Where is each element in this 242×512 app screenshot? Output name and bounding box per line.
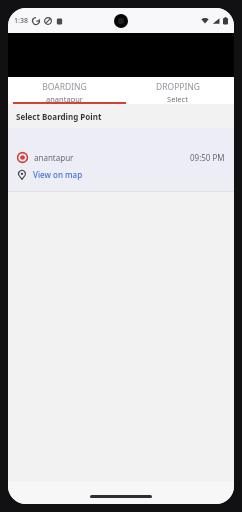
button[interactable]: View on map: [17, 168, 89, 181]
button[interactable]: Selected boarding point: [8, 128, 234, 192]
other: View on map: [17, 170, 27, 180]
staticText: anantapur: [46, 94, 83, 104]
staticText: DROPPING: [156, 81, 200, 93]
staticText: Select Boarding Point: [16, 111, 102, 122]
button[interactable]: DROPPING: [121, 77, 234, 104]
staticText: Select: [167, 94, 188, 104]
button[interactable]: BOARDING: [8, 77, 121, 104]
staticText: BOARDING: [42, 81, 87, 93]
staticText: 09:50 PM: [190, 152, 225, 163]
other: Selected boarding point: [17, 152, 28, 163]
staticText: View on map: [33, 169, 83, 180]
staticText: anantapur: [34, 152, 74, 163]
staticText: 1:38: [14, 16, 28, 26]
